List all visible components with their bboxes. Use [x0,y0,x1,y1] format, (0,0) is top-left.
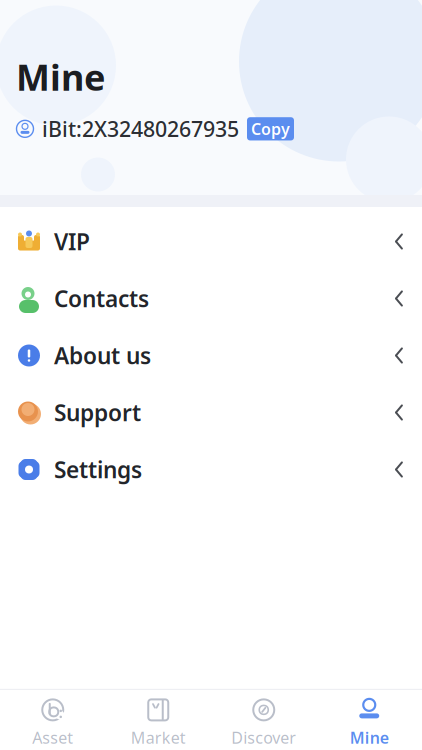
staticText: Asset [32,727,73,748]
staticText: Mine [16,53,105,101]
button[interactable]: Market [105,690,211,750]
staticText: Settings [54,454,142,484]
button[interactable]: About us [0,327,422,384]
button[interactable]: Contacts [0,270,422,327]
button[interactable]: VIP [0,213,422,270]
staticText: Copy [251,118,290,139]
button[interactable]: Discover [211,690,316,750]
staticText: Discover [231,727,296,748]
button[interactable]: Asset [0,690,105,750]
button[interactable]: Support [0,384,422,441]
staticText: VIP [54,226,90,256]
staticText: Mine [350,727,389,748]
staticText: Market [131,727,186,748]
staticText: About us [54,340,151,370]
button[interactable]: Mine [316,690,422,750]
staticText: Contacts [54,283,149,313]
staticText: Support [54,397,141,427]
staticText: iBit:2X32480267935 [42,115,239,143]
button[interactable]: Copy [247,117,294,140]
button[interactable]: Settings [0,441,422,498]
